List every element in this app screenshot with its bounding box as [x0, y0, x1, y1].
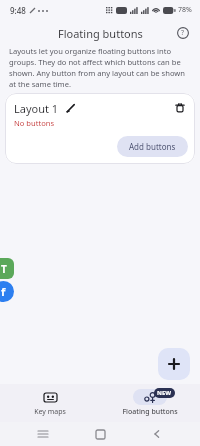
button[interactable]: Home: [86, 422, 114, 446]
staticText: No buttons: [14, 118, 55, 128]
staticText: f: [1, 284, 6, 299]
button[interactable]: Layout 1: [5, 93, 195, 164]
staticText: NEW: [157, 389, 172, 397]
staticText: 9:48: [10, 5, 26, 16]
button[interactable]: NEW: [100, 384, 200, 422]
staticText: ?: [181, 28, 185, 38]
button[interactable]: Help: [172, 22, 194, 44]
staticText: T: [1, 262, 7, 276]
staticText: Add buttons: [129, 141, 176, 152]
button[interactable]: Back: [143, 422, 171, 446]
button[interactable]: Delete layout: [172, 100, 188, 116]
button[interactable]: Floating button f: [0, 281, 14, 302]
staticText: Layouts let you organize floating button…: [9, 46, 191, 89]
button[interactable]: Recents: [29, 422, 57, 446]
staticText: Layout 1: [14, 101, 59, 116]
button[interactable]: Rename layout: [64, 101, 78, 115]
staticText: Floating buttons: [122, 407, 178, 417]
staticText: 78%: [178, 5, 192, 15]
staticText: Floating buttons: [58, 26, 143, 41]
button[interactable]: Floating button T: [0, 258, 14, 279]
button[interactable]: Key maps: [0, 384, 100, 422]
staticText: Key maps: [34, 407, 66, 417]
button[interactable]: Add layout: [158, 348, 190, 380]
button[interactable]: Add buttons: [117, 136, 188, 157]
